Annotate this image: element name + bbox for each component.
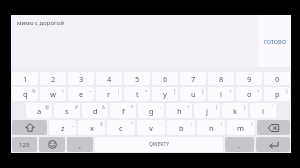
button[interactable]: u	[180, 87, 206, 101]
staticText: p	[275, 89, 280, 99]
staticText: "	[131, 121, 133, 127]
staticText: $	[100, 121, 103, 127]
button[interactable]: e	[68, 87, 94, 101]
staticText: i	[220, 89, 222, 99]
staticText: e	[79, 89, 84, 99]
button[interactable]: r	[96, 87, 122, 101]
button[interactable]: Emoji	[39, 137, 65, 152]
button[interactable]: q	[12, 87, 38, 101]
staticText: ,	[79, 140, 82, 150]
button[interactable]: ,	[67, 137, 93, 152]
staticText: q	[23, 89, 28, 99]
button[interactable]: 7	[180, 72, 206, 85]
button[interactable]: t	[124, 87, 150, 101]
button[interactable]: 8	[208, 72, 234, 85]
staticText: *	[131, 104, 134, 110]
staticText: >	[257, 88, 260, 94]
button[interactable]: s	[54, 103, 80, 118]
button[interactable]: y	[152, 87, 178, 101]
staticText: 6	[163, 74, 168, 84]
staticText: y	[163, 89, 167, 99]
button[interactable]: Shift	[12, 120, 47, 135]
button[interactable]: 1	[12, 72, 38, 85]
staticText: u	[191, 89, 196, 99]
button[interactable]: c	[107, 120, 135, 135]
staticText: 2	[51, 74, 56, 84]
button[interactable]: o	[236, 87, 262, 101]
staticText: <	[229, 88, 232, 94]
button[interactable]: z	[49, 120, 76, 135]
button[interactable]: p	[264, 87, 290, 101]
staticText: ГОТОВО	[264, 38, 286, 45]
button[interactable]: j	[194, 103, 220, 118]
staticText: z	[61, 123, 65, 133]
staticText: мимо с дорогой	[17, 19, 64, 27]
button[interactable]: 9	[236, 72, 262, 85]
button[interactable]: n	[197, 120, 225, 135]
staticText: x	[90, 123, 94, 133]
button[interactable]: 3	[68, 72, 94, 85]
button[interactable]: v	[137, 120, 165, 135]
staticText: 7	[191, 74, 196, 84]
button[interactable]: g	[138, 103, 164, 118]
button[interactable]: ГОТОВО	[259, 15, 291, 67]
staticText: a	[37, 106, 42, 116]
staticText: 0	[275, 74, 280, 84]
button[interactable]: d	[82, 103, 108, 118]
button[interactable]: Enter	[256, 137, 290, 152]
staticText: f	[122, 106, 125, 116]
button[interactable]: l	[250, 103, 276, 118]
button[interactable]: b	[167, 120, 195, 135]
button[interactable]: .	[225, 137, 254, 152]
button[interactable]: QWERTY	[95, 137, 223, 152]
staticText: (	[216, 104, 218, 110]
button[interactable]: h	[166, 103, 192, 118]
staticText: [	[174, 88, 176, 94]
button[interactable]: 4	[96, 72, 122, 85]
button[interactable]: 0	[264, 72, 290, 85]
button[interactable]: w	[40, 87, 66, 101]
staticText: '	[272, 104, 274, 110]
staticText: :	[161, 121, 163, 127]
staticText: /	[251, 121, 253, 127]
button[interactable]: k	[222, 103, 248, 118]
button[interactable]: Backspace	[257, 120, 290, 135]
staticText: QWERTY	[149, 141, 170, 148]
button[interactable]: мимо с дорогой	[11, 15, 259, 67]
staticText: {	[286, 88, 288, 94]
button[interactable]: 6	[152, 72, 178, 85]
staticText: l	[262, 106, 264, 116]
button[interactable]: 123	[12, 137, 37, 152]
staticText: |	[117, 88, 120, 94]
button[interactable]: x	[78, 120, 105, 135]
staticText: 4	[107, 74, 112, 84]
button[interactable]: a	[26, 103, 52, 118]
staticText: &	[102, 104, 106, 110]
staticText: 5	[135, 74, 140, 84]
staticText: ;	[191, 121, 193, 127]
staticText: 1	[23, 74, 28, 84]
staticText: k	[233, 106, 238, 116]
button[interactable]: m	[227, 120, 255, 135]
staticText: \	[62, 88, 64, 94]
staticText: o	[247, 89, 252, 99]
staticText: %	[32, 88, 36, 94]
staticText: g	[149, 106, 154, 116]
staticText: r	[107, 89, 111, 99]
staticText: _	[72, 121, 74, 127]
staticText: s	[65, 106, 69, 116]
staticText: b	[179, 123, 184, 133]
staticText: m	[237, 123, 245, 133]
button[interactable]: i	[208, 87, 234, 101]
staticText: )	[244, 104, 246, 110]
staticText: ~	[89, 88, 92, 94]
staticText: w	[50, 89, 56, 99]
staticText: j	[206, 106, 208, 116]
staticText: d	[93, 106, 98, 116]
staticText: n	[209, 123, 214, 133]
button[interactable]: f	[110, 103, 136, 118]
staticText: t	[136, 89, 139, 99]
button[interactable]: 2	[40, 72, 66, 85]
staticText: ]	[202, 88, 204, 94]
button[interactable]: 5	[124, 72, 150, 85]
